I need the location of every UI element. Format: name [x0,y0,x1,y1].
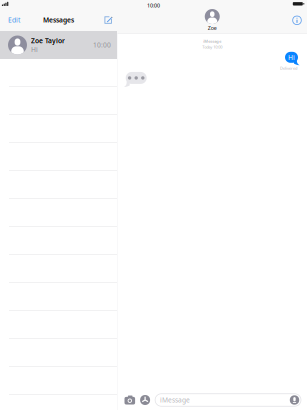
staticText: Hi [288,53,295,62]
button[interactable]: Compose [103,14,114,25]
staticText: iMessage [160,396,190,404]
button[interactable]: Conversation details [292,15,302,25]
button[interactable]: Edit [6,14,22,26]
staticText: Edit [8,16,20,24]
staticText: Zoe [208,24,217,32]
staticText: iMessage [203,38,221,44]
staticText: 10:00 [93,41,111,49]
staticText: Today 10:00 [202,44,222,50]
button[interactable]: Apps [140,395,150,405]
staticText: Hi [31,45,38,54]
button[interactable]: iMessage [155,394,301,406]
staticText: Delivered [280,66,297,71]
staticText: 10:00 [147,2,160,9]
button[interactable]: Camera [124,395,135,404]
button[interactable]: Zoe Taylor [0,31,117,59]
staticText: Zoe Taylor [31,36,65,45]
staticText: Messages [43,16,74,24]
